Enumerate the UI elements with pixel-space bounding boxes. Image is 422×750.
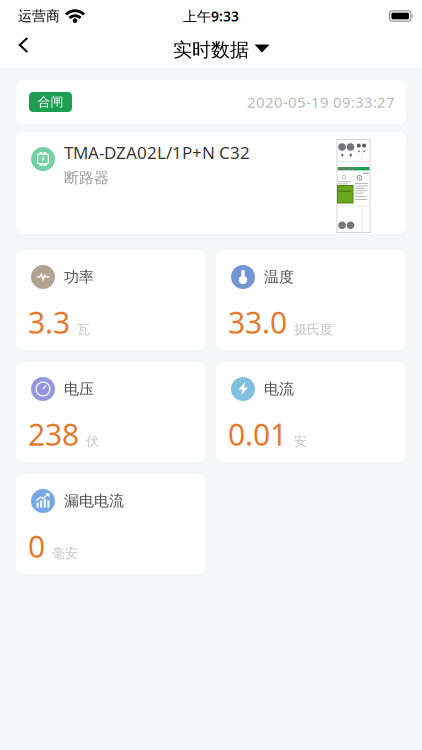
staticText: 2020-05-19 09:33:27 [247, 92, 395, 112]
staticText: 电压 [64, 380, 94, 398]
staticText: 33.0 [228, 302, 287, 342]
staticText: 温度 [264, 268, 294, 286]
staticText: 安 [294, 433, 307, 449]
staticText: 238 [28, 414, 79, 454]
staticText: 0.01 [228, 414, 287, 454]
staticText: 0 [28, 526, 45, 566]
staticText: 3.3 [28, 302, 70, 342]
button[interactable]: Back [0, 32, 42, 68]
staticText: 上午9:33 [183, 7, 239, 25]
staticText: 实时数据 [173, 38, 249, 62]
button[interactable]: 实时数据 [173, 38, 249, 62]
staticText: 伏 [86, 433, 99, 449]
staticText: 合闸 [37, 94, 63, 110]
staticText: 运营商 [18, 7, 60, 25]
button[interactable]: 合闸 [29, 92, 72, 112]
staticText: TMA-DZA02L/1P+N C32 [64, 141, 250, 164]
staticText: 断路器 [64, 169, 109, 187]
staticText: 瓦 [77, 321, 90, 337]
staticText: 漏电电流 [64, 492, 124, 510]
staticText: 电流 [264, 380, 294, 398]
staticText: 毫安 [52, 545, 78, 561]
staticText: 摄氏度 [294, 321, 333, 337]
staticText: 功率 [64, 268, 94, 286]
